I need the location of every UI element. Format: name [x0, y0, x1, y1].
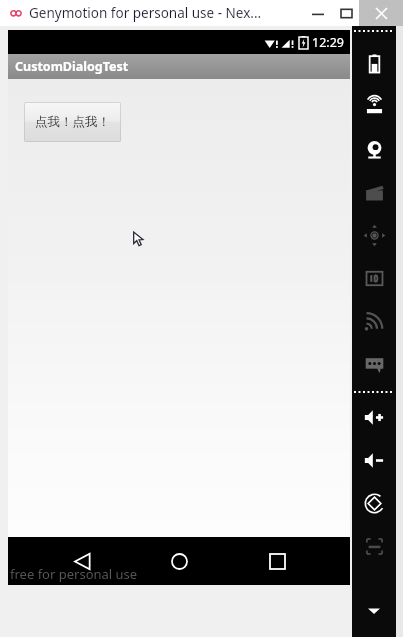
button[interactable]: Minimize — [305, 0, 331, 26]
button[interactable]: Scale 1:1 — [352, 525, 396, 568]
button[interactable]: Maximize — [333, 0, 359, 26]
button[interactable]: 点我！点我！ — [24, 102, 121, 142]
staticText: 12:29 — [312, 34, 344, 51]
staticText: 点我！点我！ — [35, 114, 110, 130]
button[interactable]: Volume up — [352, 396, 396, 439]
button[interactable]: Network — [352, 300, 396, 343]
button[interactable]: Close — [359, 0, 403, 26]
button[interactable]: Volume down — [352, 439, 396, 482]
staticText: Genymotion for personal use - Nex... — [29, 4, 262, 22]
staticText: CustomDialogTest — [15, 58, 129, 75]
button[interactable]: Battery — [352, 42, 396, 85]
button[interactable]: SMS — [352, 343, 396, 386]
staticText: free for personal use — [10, 565, 138, 583]
button[interactable]: Home — [155, 537, 203, 585]
button[interactable]: Rotate — [352, 482, 396, 525]
button[interactable]: Camera — [352, 128, 396, 171]
button[interactable]: Identifiers — [352, 257, 396, 300]
button[interactable]: Screen recorder — [352, 171, 396, 214]
button[interactable]: Recent apps — [253, 537, 301, 585]
button[interactable]: Back — [58, 537, 106, 585]
button[interactable]: Multi-touch — [352, 214, 396, 257]
other: More — [368, 605, 380, 617]
button[interactable]: GPS — [352, 85, 396, 128]
